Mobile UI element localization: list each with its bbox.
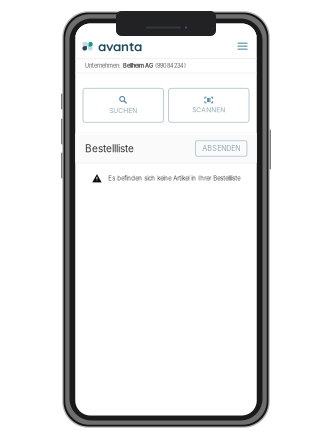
staticText: (99084234): [153, 62, 186, 69]
staticText: Bellheim AG: [123, 62, 153, 69]
button[interactable]: SUCHEN: [83, 88, 163, 122]
staticText: Unternehmen:: [85, 62, 123, 69]
staticText: ABSENDEN: [202, 144, 240, 153]
button[interactable]: Menu: [236, 40, 250, 52]
staticText: avanta: [98, 38, 142, 55]
button[interactable]: ABSENDEN: [195, 141, 247, 156]
staticText: Es befinden sich keine Artikel in Ihrer …: [108, 175, 240, 182]
staticText: SCANNEN: [192, 106, 225, 114]
staticText: Bestellliste: [85, 142, 134, 155]
staticText: SUCHEN: [109, 107, 137, 115]
button[interactable]: SCANNEN: [168, 88, 249, 122]
